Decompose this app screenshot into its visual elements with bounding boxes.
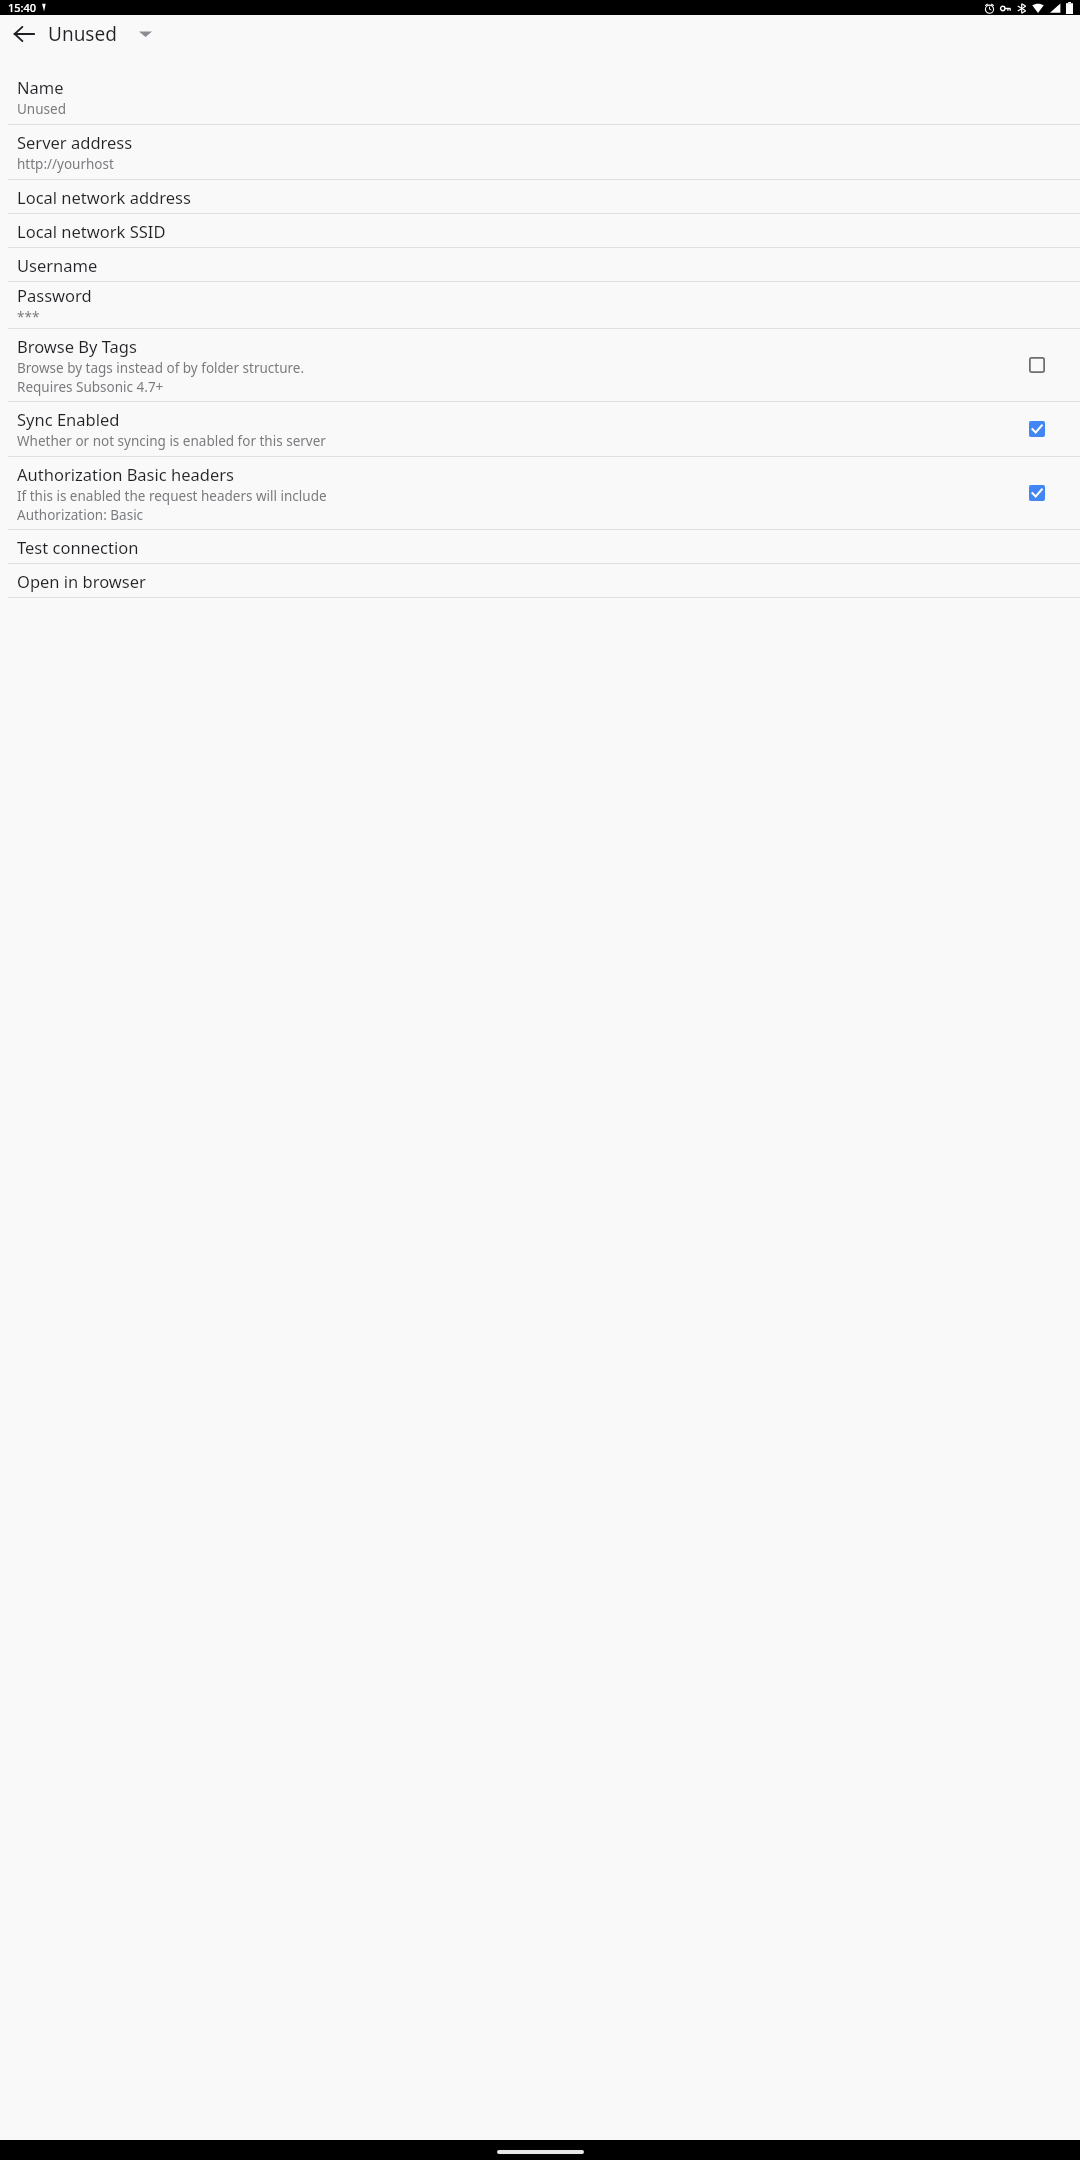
button[interactable]: Unchecked (1022, 350, 1052, 380)
button[interactable]: Checked (1022, 478, 1052, 508)
button[interactable]: Checked (1022, 414, 1052, 444)
button[interactable]: Sync Enabled (0, 402, 1080, 456)
button[interactable]: Server address (0, 125, 1080, 179)
button[interactable]: Unused (48, 15, 152, 53)
staticText: If this is enabled the request headers w… (17, 487, 327, 505)
button[interactable]: Username (0, 248, 1080, 281)
button[interactable]: Browse By Tags (0, 329, 1080, 401)
staticText: Authorization: Basic (17, 506, 144, 524)
staticText: Browse By Tags (17, 335, 137, 357)
staticText: Unused (48, 21, 117, 47)
button[interactable]: Back (4, 15, 44, 53)
button[interactable]: Local network SSID (0, 214, 1080, 247)
staticText: Sync Enabled (17, 408, 120, 430)
staticText: Unused (17, 100, 66, 118)
staticText: Server address (17, 131, 133, 153)
button[interactable]: Authorization Basic headers (0, 457, 1080, 529)
button[interactable]: Name (0, 70, 1080, 124)
staticText: Password (17, 284, 92, 306)
button[interactable]: Password (0, 282, 1080, 328)
staticText: Name (17, 76, 64, 98)
button[interactable]: Open in browser (0, 564, 1080, 597)
button[interactable]: Test connection (0, 530, 1080, 563)
staticText: *** (17, 308, 40, 326)
button[interactable]: Local network address (0, 180, 1080, 213)
staticText: Username (17, 254, 98, 276)
staticText: Test connection (17, 536, 139, 558)
staticText: Open in browser (17, 570, 146, 592)
staticText: Requires Subsonic 4.7+ (17, 378, 164, 396)
staticText: Whether or not syncing is enabled for th… (17, 432, 326, 450)
staticText: 15:40 (8, 0, 37, 15)
staticText: http://yourhost (17, 155, 114, 173)
staticText: Browse by tags instead of by folder stru… (17, 359, 305, 377)
staticText: Local network SSID (17, 220, 166, 242)
staticText: Authorization Basic headers (17, 463, 234, 485)
staticText: Local network address (17, 186, 191, 208)
